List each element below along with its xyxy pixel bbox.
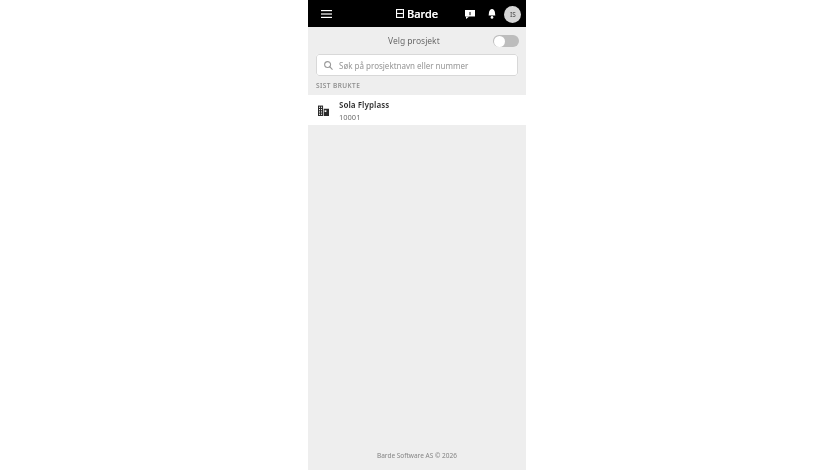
button[interactable]: Velg prosjekt toggle xyxy=(493,33,519,49)
staticText: Barde xyxy=(407,6,439,21)
button[interactable]: Notifications xyxy=(482,4,502,24)
staticText: 10001 xyxy=(339,112,361,122)
staticText: Søk på prosjektnavn eller nummer xyxy=(339,60,469,71)
button[interactable]: Søk på prosjektnavn eller nummer xyxy=(316,54,518,76)
button[interactable]: Menu xyxy=(316,4,336,24)
staticText: Sola Flyplass xyxy=(339,99,390,110)
staticText: Velg prosjekt xyxy=(388,35,440,47)
staticText: Barde Software AS © 2026 xyxy=(377,451,457,460)
staticText: IS xyxy=(510,10,516,19)
button[interactable]: Messages xyxy=(460,4,480,24)
button[interactable]: Account xyxy=(504,6,521,23)
button[interactable]: Sola Flyplass xyxy=(308,95,526,125)
staticText: SIST BRUKTE xyxy=(316,81,361,90)
